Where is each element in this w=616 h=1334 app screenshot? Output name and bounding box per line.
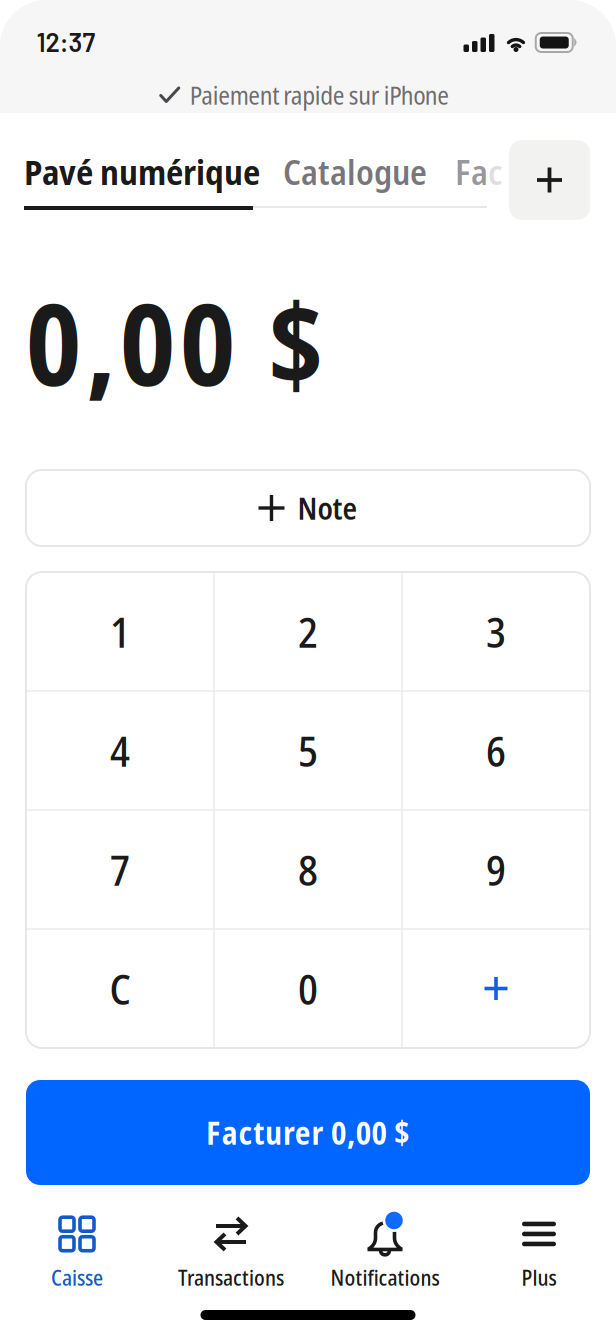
staticText: 2 bbox=[298, 603, 318, 660]
staticText: Facturer 0,00 $ bbox=[206, 1111, 410, 1154]
button[interactable]: 6 bbox=[402, 691, 590, 810]
staticText: 1 bbox=[110, 603, 130, 660]
button[interactable]: 9 bbox=[402, 810, 590, 929]
staticText: C bbox=[109, 960, 130, 1017]
staticText: Notifications bbox=[330, 1263, 439, 1292]
staticText: Transactions bbox=[178, 1263, 284, 1292]
staticText: 12:37 bbox=[36, 26, 95, 57]
staticText: 7 bbox=[110, 841, 130, 898]
button[interactable]: C bbox=[26, 929, 214, 1048]
staticText: 0,00 $ bbox=[26, 266, 324, 418]
button[interactable]: Facturer 0,00 $ bbox=[26, 1080, 590, 1185]
staticText: 0 bbox=[298, 960, 318, 1017]
staticText: Caisse bbox=[51, 1263, 103, 1292]
staticText: c bbox=[488, 148, 502, 195]
button[interactable]: Catalogue bbox=[283, 148, 427, 195]
staticText: Fa bbox=[455, 148, 488, 195]
button[interactable]: 4 bbox=[26, 691, 214, 810]
staticText: Note bbox=[297, 488, 357, 528]
button[interactable]: 2 bbox=[214, 572, 402, 691]
button[interactable]: 7 bbox=[26, 810, 214, 929]
button[interactable]: 3 bbox=[402, 572, 590, 691]
staticText: 4 bbox=[110, 722, 130, 779]
staticText: 8 bbox=[298, 841, 318, 898]
button[interactable]: Ajouter un montant bbox=[402, 929, 590, 1048]
staticText: 3 bbox=[486, 603, 506, 660]
button[interactable]: Pavé numérique bbox=[24, 148, 260, 195]
staticText: 9 bbox=[486, 841, 506, 898]
staticText: Paiement rapide sur iPhone bbox=[190, 78, 449, 112]
button[interactable]: 1 bbox=[26, 572, 214, 691]
staticText: Pavé numérique bbox=[24, 148, 260, 195]
button[interactable]: Transactions bbox=[154, 1206, 308, 1298]
button[interactable]: Fa bbox=[455, 148, 502, 195]
button[interactable]: Notifications bbox=[308, 1206, 462, 1298]
button[interactable]: Ajouter bbox=[509, 140, 590, 220]
staticText: 6 bbox=[486, 722, 506, 779]
staticText: Plus bbox=[521, 1263, 556, 1292]
button[interactable]: Note bbox=[26, 470, 590, 546]
staticText: 5 bbox=[298, 722, 318, 779]
button[interactable]: Plus bbox=[462, 1206, 616, 1298]
staticText: Catalogue bbox=[283, 148, 427, 195]
button[interactable]: 5 bbox=[214, 691, 402, 810]
button[interactable]: Caisse bbox=[0, 1206, 154, 1298]
button[interactable]: 8 bbox=[214, 810, 402, 929]
button[interactable]: 0 bbox=[214, 929, 402, 1048]
